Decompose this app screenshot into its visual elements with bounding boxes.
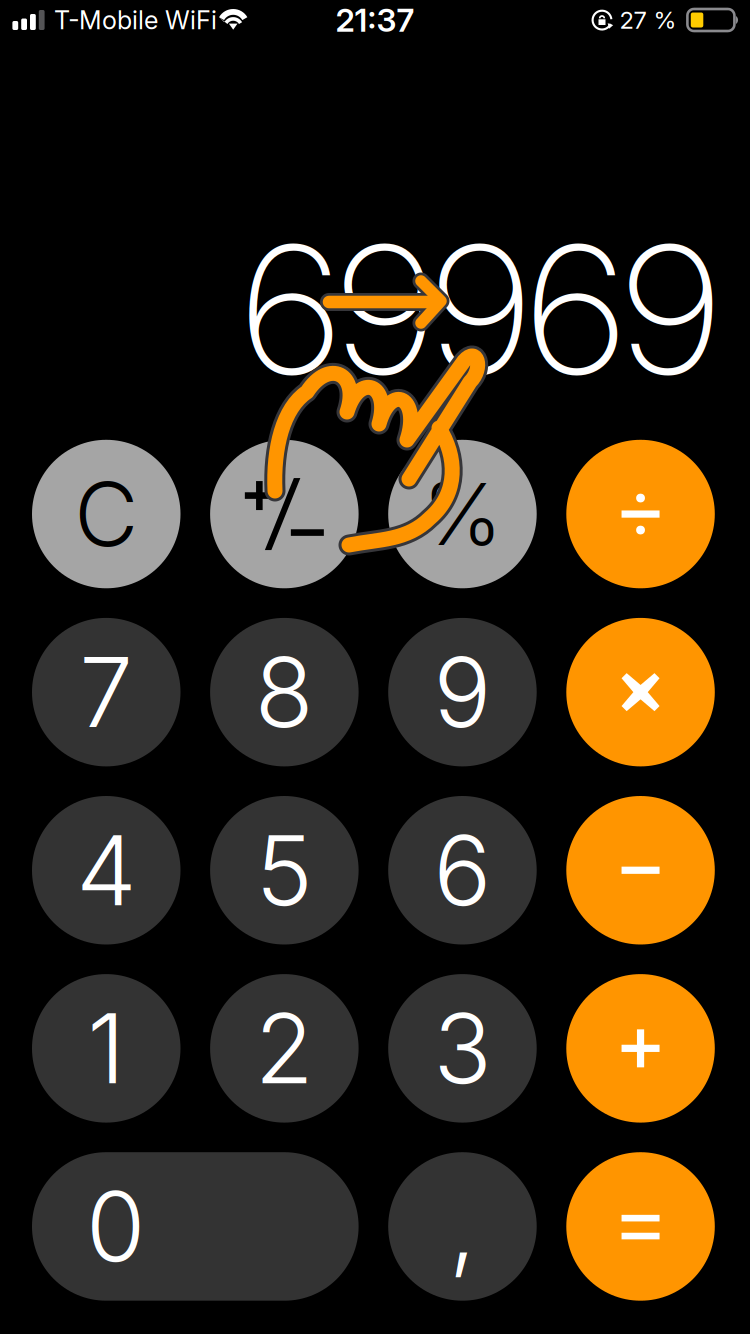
staticText: 27 % — [619, 5, 676, 34]
staticText: , — [449, 1168, 476, 1285]
staticText: 2 — [255, 990, 314, 1106]
button[interactable]: , — [388, 1152, 537, 1301]
button[interactable]: 1 — [32, 974, 180, 1123]
staticText: 8 — [255, 634, 314, 750]
button[interactable]: 7 — [32, 618, 180, 766]
button[interactable]: Multiply — [566, 618, 715, 766]
staticText: 5 — [256, 812, 313, 928]
staticText: % — [422, 462, 502, 566]
staticText: 6 — [433, 812, 491, 928]
button[interactable]: 5 — [210, 796, 359, 944]
staticText: 0 — [86, 1168, 145, 1285]
staticText: 1 — [87, 990, 125, 1106]
staticText: 69969 — [243, 203, 718, 416]
button[interactable]: 2 — [210, 974, 359, 1123]
button[interactable]: % — [388, 440, 537, 588]
button[interactable]: Divide — [566, 440, 715, 588]
button[interactable]: 9 — [388, 618, 537, 766]
button[interactable]: 6 — [388, 796, 537, 944]
button[interactable]: Equals — [566, 1152, 715, 1301]
button[interactable]: 8 — [210, 618, 359, 766]
button[interactable]: 4 — [32, 796, 180, 944]
staticText: T-Mobile WiFi — [54, 5, 217, 35]
staticText: 4 — [76, 812, 136, 928]
button[interactable]: 3 — [388, 974, 537, 1123]
button[interactable]: C — [32, 440, 180, 588]
staticText: 9 — [433, 634, 491, 750]
staticText: 21:37 — [335, 1, 414, 39]
button[interactable]: Plus Minus — [210, 440, 359, 588]
button[interactable]: Add — [566, 974, 715, 1123]
button[interactable]: Subtract — [566, 796, 715, 944]
staticText: C — [74, 461, 138, 567]
staticText: 3 — [433, 990, 491, 1106]
staticText: 7 — [79, 634, 133, 750]
button[interactable]: 0 — [32, 1152, 359, 1301]
